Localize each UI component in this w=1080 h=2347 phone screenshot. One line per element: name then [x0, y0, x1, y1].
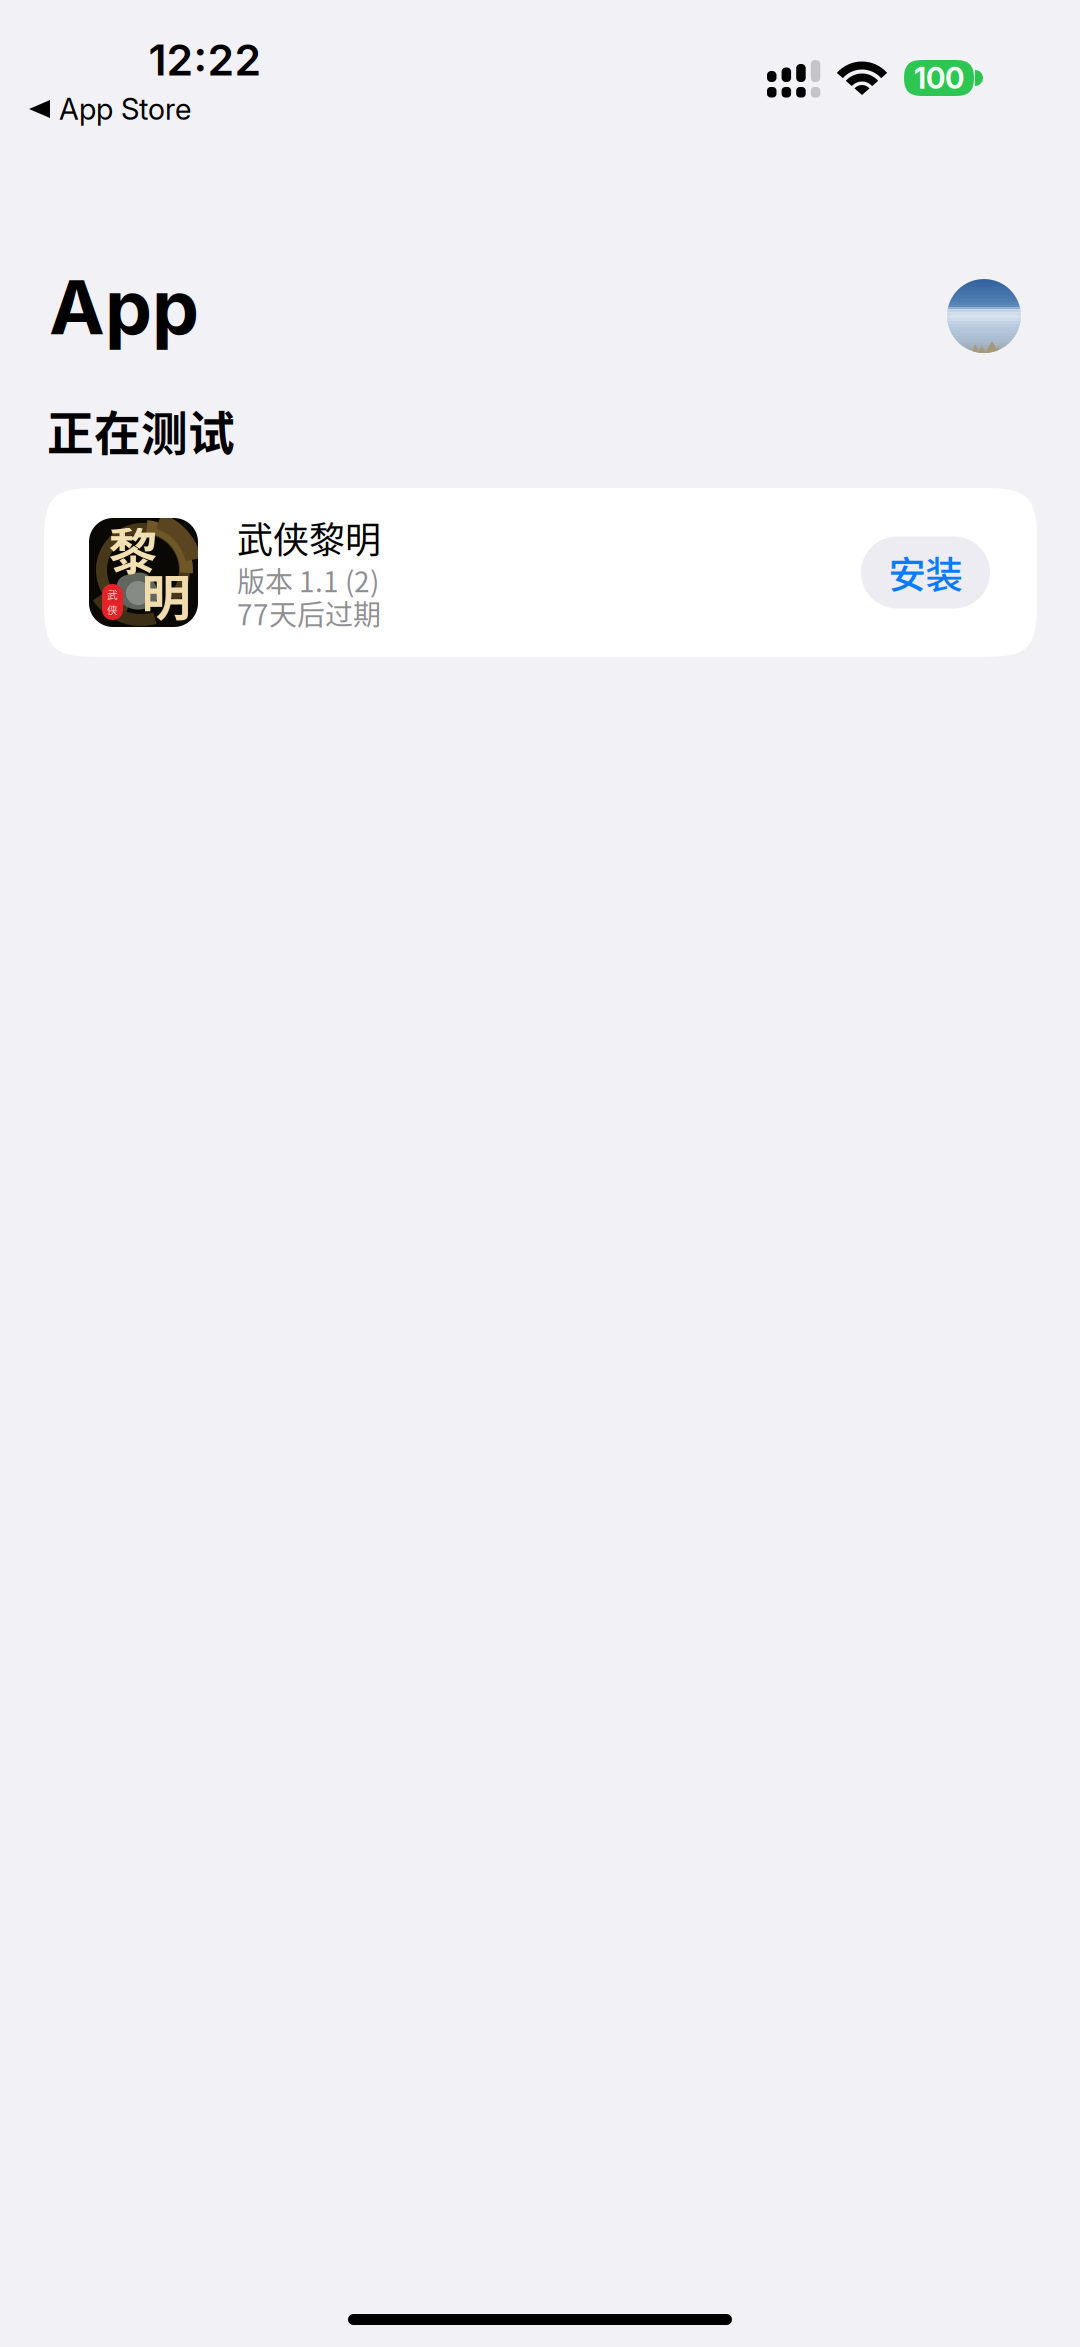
button[interactable]: 黎: [44, 488, 1037, 657]
button[interactable]: Account: [947, 279, 1021, 353]
staticText: 明: [141, 558, 190, 630]
staticText: 安装: [888, 545, 962, 600]
staticText: 12:22: [148, 34, 261, 86]
staticText: 正在测试: [47, 396, 235, 464]
staticText: 版本 1.1 (2): [237, 560, 379, 600]
staticText: App: [49, 262, 199, 352]
staticText: 100: [914, 60, 964, 96]
staticText: 黎: [108, 512, 157, 584]
staticText: 武 侠: [107, 587, 118, 617]
staticText: 77天后过期: [237, 593, 381, 633]
staticText: App Store: [59, 91, 191, 127]
staticText: 武侠黎明: [237, 511, 381, 563]
button[interactable]: App Store: [29, 88, 191, 130]
